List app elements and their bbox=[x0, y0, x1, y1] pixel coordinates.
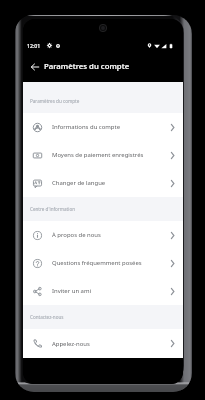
button[interactable]: Informations du compte bbox=[23, 113, 183, 141]
staticText: Changer de langue bbox=[52, 179, 106, 187]
staticText: Informations du compte bbox=[52, 123, 120, 131]
staticText: Moyens de paiement enregistrés bbox=[52, 151, 144, 159]
staticText: À propos de nous bbox=[52, 231, 101, 239]
staticText: Appelez-nous bbox=[52, 340, 90, 348]
staticText: Questions fréquemment posées bbox=[52, 259, 142, 267]
staticText: Centre d'information bbox=[30, 206, 76, 212]
button[interactable]: Back bbox=[25, 57, 44, 76]
staticText: Contactez-nous bbox=[30, 314, 64, 320]
button[interactable]: Moyens de paiement enregistrés bbox=[23, 141, 183, 169]
button[interactable]: À propos de nous bbox=[23, 221, 183, 249]
button[interactable]: Appelez-nous bbox=[23, 329, 183, 358]
button[interactable]: Inviter un ami bbox=[23, 277, 183, 305]
staticText: Paramètres du compte bbox=[44, 61, 130, 72]
button[interactable]: Questions fréquemment posées bbox=[23, 249, 183, 277]
staticText: Inviter un ami bbox=[52, 287, 92, 295]
staticText: Paramètres du compte bbox=[30, 98, 80, 104]
staticText: 12:01 bbox=[27, 42, 41, 49]
button[interactable]: Changer de langue bbox=[23, 169, 183, 197]
